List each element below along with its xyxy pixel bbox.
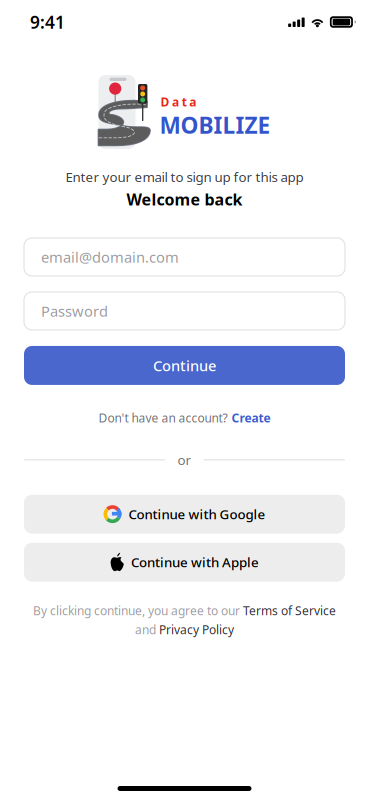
staticText: or xyxy=(177,451,191,469)
button[interactable]: Continue with Apple xyxy=(24,543,345,582)
staticText: MOBILIZE xyxy=(159,110,270,140)
button[interactable]: Don't have an account? xyxy=(98,410,270,426)
staticText: and xyxy=(135,622,159,637)
staticText: t xyxy=(182,94,187,110)
button[interactable]: Password xyxy=(24,292,345,330)
button[interactable]: Continue xyxy=(24,346,345,385)
staticText: a xyxy=(172,94,179,110)
staticText: Create xyxy=(231,410,270,426)
button[interactable]: email@domain.com xyxy=(24,238,345,276)
staticText: Continue with Google xyxy=(128,505,265,523)
button[interactable]: Continue with Google xyxy=(24,495,345,534)
staticText: Password xyxy=(41,301,108,321)
staticText: 9:41 xyxy=(30,10,65,33)
staticText: Privacy Policy xyxy=(159,622,234,637)
staticText: Enter your email to sign up for this app xyxy=(65,168,303,186)
staticText: a xyxy=(189,94,196,110)
staticText: Continue with Apple xyxy=(131,553,259,571)
staticText: Welcome back xyxy=(126,189,242,210)
staticText: email@domain.com xyxy=(41,247,179,267)
staticText: By clicking continue, you agree to our xyxy=(33,603,243,619)
staticText: Don't have an account? xyxy=(98,410,227,426)
staticText: D xyxy=(160,94,169,110)
staticText: Terms of Service xyxy=(243,603,336,619)
staticText: Continue xyxy=(153,356,216,375)
